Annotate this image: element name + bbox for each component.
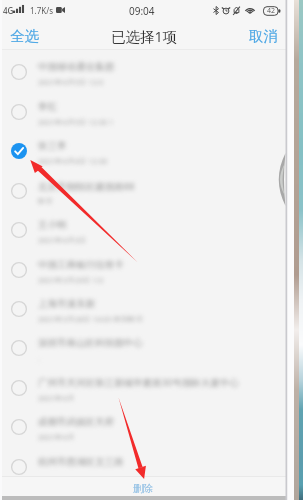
button[interactable]: Select item: [2, 328, 286, 367]
button[interactable]: 全选: [2, 22, 49, 50]
staticText: 4G: [3, 5, 14, 16]
staticText: 2021年4月: [38, 393, 75, 403]
staticText: 北京市朝阳区建国路88: [38, 180, 135, 193]
staticText: 杭州市西湖区文三路: [38, 456, 124, 468]
staticText: 2021年4月: [38, 432, 75, 442]
staticText: 广州市天河区珠江新城华夏路30号国际大厦中心: [38, 376, 239, 389]
staticText: 成都市武侯区天府: [38, 416, 114, 428]
staticText: 2021年4月5日 12:30 1: [38, 117, 114, 127]
staticText: 已选择1项: [111, 26, 178, 46]
staticText: 1.7K/s: [30, 5, 54, 16]
button[interactable]: Select item: [2, 447, 286, 476]
staticText: 取消: [249, 27, 278, 45]
other: Selected: [11, 143, 27, 159]
other: Select item: [11, 262, 27, 278]
staticText: 中国移动通信集团: [38, 61, 114, 73]
staticText: 李红: [38, 101, 57, 113]
staticText: 王小明: [38, 219, 67, 231]
other: Select item: [11, 104, 27, 120]
staticText: 09:04: [129, 4, 155, 18]
other: Select item: [11, 301, 27, 317]
other: Select item: [11, 340, 27, 356]
button[interactable]: Select item: [2, 250, 286, 289]
button[interactable]: Select item: [2, 92, 286, 131]
staticText: 昨天: [38, 197, 53, 206]
button[interactable]: Selected: [2, 131, 286, 170]
other: Select item: [11, 222, 27, 238]
staticText: 中国工商银行信用卡: [38, 259, 124, 271]
staticText: 2021年3月28日 14:05 收到昨天: [38, 314, 144, 324]
other: Select item: [11, 380, 27, 396]
staticText: 2021年4月6日 12:30: [38, 156, 108, 166]
button[interactable]: 删除: [2, 477, 286, 496]
button[interactable]: Select item: [2, 407, 286, 446]
other: Select item: [11, 419, 27, 435]
other: Select item: [11, 64, 27, 80]
button[interactable]: Select item: [2, 171, 286, 210]
button[interactable]: Select item: [2, 289, 286, 328]
button[interactable]: 取消: [239, 22, 286, 50]
other: Select item: [11, 183, 27, 199]
button[interactable]: Select item: [2, 52, 286, 91]
staticText: 2021年4月5日 12:0: [38, 77, 104, 87]
staticText: 张三李: [38, 140, 67, 152]
staticText: 42: [267, 6, 276, 16]
staticText: 全选: [10, 27, 39, 45]
button[interactable]: Select item: [2, 368, 286, 407]
staticText: 2021年3月29日 1:0: [38, 275, 104, 285]
staticText: 删除: [133, 482, 153, 495]
other: Select item: [11, 459, 27, 475]
staticText: 上海市浦东新: [38, 298, 95, 310]
staticText: 2021年4月3日: [38, 235, 87, 245]
button[interactable]: Select item: [2, 210, 286, 249]
staticText: 深圳市南山区科技园中心: [38, 337, 143, 349]
